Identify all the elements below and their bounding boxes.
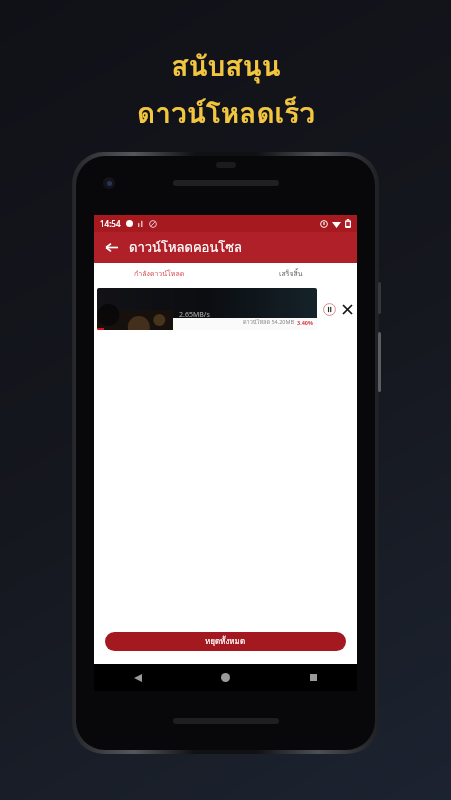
button[interactable]: Recents <box>269 664 357 691</box>
button[interactable]: Home <box>181 664 269 691</box>
staticText: ดาวน์โหลดคอนโซล <box>129 237 243 258</box>
staticText: 2.65MB/s <box>179 310 210 320</box>
staticText: เสร็จสิ้น <box>279 268 303 279</box>
button[interactable]: เสร็จสิ้น <box>225 263 357 284</box>
button[interactable]: Back <box>94 664 181 691</box>
staticText: ดาวน์โหลด 54.20MB <box>243 318 295 327</box>
button[interactable]: Pause <box>321 301 337 317</box>
staticText: ดาวน์โหลดเร็ว <box>137 91 315 136</box>
button[interactable]: Cancel <box>339 301 355 317</box>
button[interactable]: หยุดทั้งหมด <box>105 632 346 651</box>
button[interactable]: กำลังดาวน์โหลด <box>94 263 225 284</box>
staticText: 14:54 <box>100 218 121 229</box>
staticText: กำลังดาวน์โหลด <box>134 268 185 279</box>
button[interactable]: Back <box>101 237 122 258</box>
staticText: 3.40% <box>297 319 313 326</box>
staticText: สนับสนุน <box>171 44 281 89</box>
button[interactable]: 2.65MB/s <box>97 288 317 330</box>
staticText: หยุดทั้งหมด <box>205 635 246 648</box>
